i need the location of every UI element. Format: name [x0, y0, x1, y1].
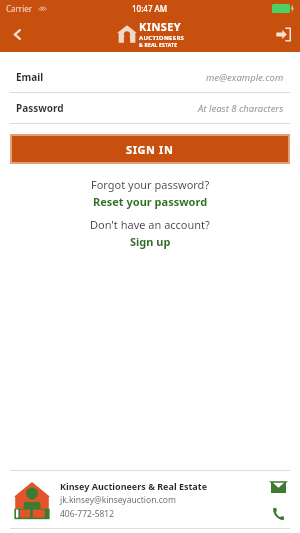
button[interactable]: Email	[0, 62, 300, 92]
staticText: Don't have an account?	[90, 217, 210, 232]
staticText: jk.kinsey@kinseyauction.com	[60, 494, 176, 506]
staticText: Forgot your password?	[91, 177, 210, 192]
button[interactable]: Email	[268, 477, 288, 497]
button[interactable]: Call	[268, 503, 288, 523]
staticText: Kinsey Auctioneers & Real Estate	[60, 480, 208, 492]
staticText: Email	[16, 70, 44, 84]
staticText: 406-772-5812	[60, 508, 115, 520]
button[interactable]: SIGN IN	[12, 136, 288, 162]
staticText: & REAL ESTATE	[139, 42, 178, 49]
staticText: me@example.com	[206, 71, 284, 84]
staticText: At least 8 characters	[198, 102, 284, 115]
staticText: SIGN IN	[126, 142, 174, 157]
staticText: AUCTIONEERS	[139, 34, 185, 42]
staticText: Reset your password	[93, 194, 208, 209]
button[interactable]: Sign in	[266, 17, 300, 51]
button[interactable]: Reset your password	[93, 194, 208, 209]
button[interactable]: Password	[0, 93, 300, 123]
button[interactable]: Back	[0, 17, 34, 51]
staticText: 10:47 AM	[132, 3, 168, 14]
staticText: Password	[16, 101, 64, 115]
button[interactable]: Sign up	[130, 234, 171, 249]
staticText: Carrier	[6, 3, 33, 14]
staticText: KINSEY	[139, 19, 182, 34]
staticText: Sign up	[130, 234, 171, 249]
